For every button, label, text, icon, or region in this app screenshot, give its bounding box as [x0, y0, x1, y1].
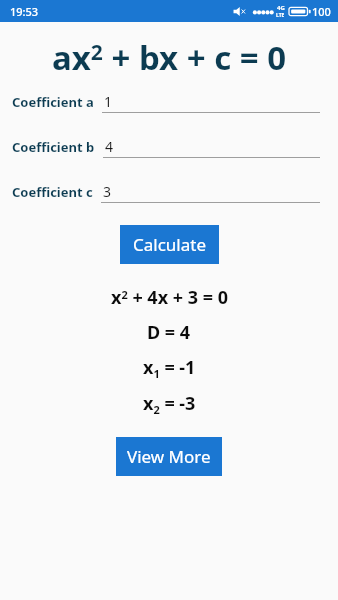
button[interactable]: Coefficient c	[12, 182, 320, 203]
staticText: Coefficient c	[12, 183, 93, 201]
staticText: D = 4	[147, 320, 191, 345]
staticText: 4	[105, 137, 114, 156]
button[interactable]: Coefficient a	[12, 92, 320, 113]
button[interactable]: Calculate	[120, 225, 219, 264]
staticText: View More	[127, 445, 211, 468]
staticText: LTE	[276, 12, 285, 19]
staticText: Coefficient b	[12, 138, 95, 156]
button[interactable]: View More	[116, 437, 222, 476]
staticText: ax2 + bx + c = 0	[52, 35, 287, 80]
staticText: x2 = -3	[143, 391, 196, 417]
staticText: Coefficient a	[12, 93, 94, 111]
button[interactable]: Coefficient b	[12, 137, 320, 158]
staticText: 19:53	[10, 4, 39, 19]
staticText: Calculate	[133, 233, 206, 256]
staticText: x1 = -1	[143, 355, 196, 381]
staticText: 1	[104, 92, 113, 111]
staticText: 4G	[277, 4, 285, 12]
staticText: 3	[103, 182, 112, 201]
staticText: 100	[312, 4, 331, 19]
staticText: x2 + 4x + 3 = 0	[111, 285, 228, 310]
